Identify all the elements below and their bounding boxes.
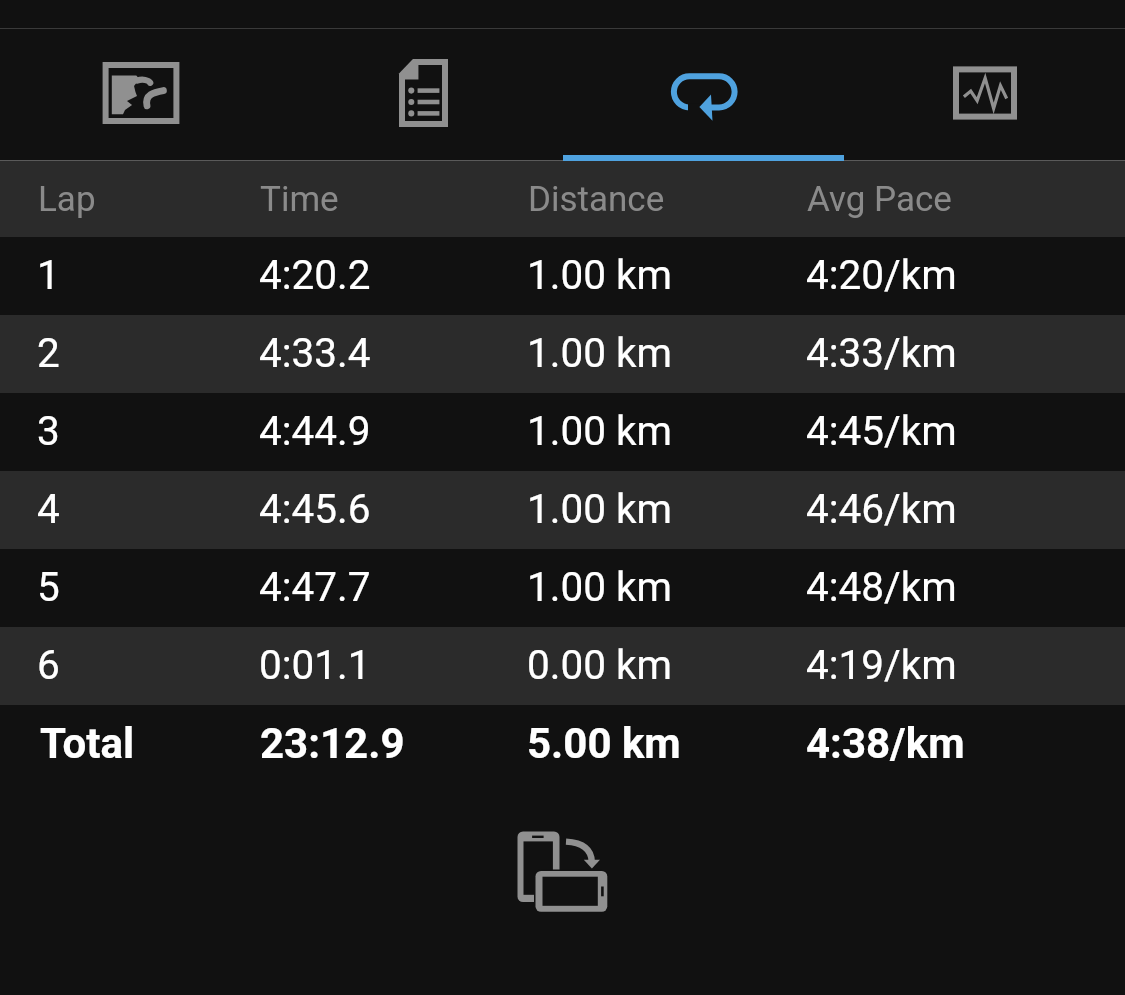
button[interactable]: Total — [0, 705, 1125, 783]
button[interactable]: 2 — [0, 315, 1125, 393]
button[interactable]: 6 — [0, 627, 1125, 705]
staticText: 4 — [37, 485, 60, 532]
staticText: 4:48/km — [806, 563, 957, 610]
staticText: 1.00 km — [527, 407, 673, 454]
staticText: Total — [40, 719, 134, 768]
staticText: 4:19/km — [806, 641, 957, 688]
staticText: 4:46/km — [806, 485, 957, 532]
staticText: 0:01.1 — [259, 641, 371, 688]
staticText: 3 — [37, 407, 60, 454]
staticText: 4:45/km — [806, 407, 957, 454]
staticText: 4:38/km — [806, 719, 965, 768]
button[interactable]: Graphs — [844, 29, 1125, 161]
staticText: 0.00 km — [527, 641, 673, 688]
staticText: 6 — [37, 641, 60, 688]
staticText: 1.00 km — [527, 485, 673, 532]
button[interactable]: 5 — [0, 549, 1125, 627]
staticText: 1 — [37, 251, 60, 298]
staticText: 1.00 km — [527, 329, 673, 376]
button[interactable]: 4 — [0, 471, 1125, 549]
button[interactable]: Rotate screen — [501, 810, 625, 934]
staticText: 4:33.4 — [259, 329, 371, 376]
staticText: 2 — [37, 329, 60, 376]
button[interactable]: 1 — [0, 237, 1125, 315]
staticText: Distance — [528, 179, 665, 220]
staticText: 4:47.7 — [259, 563, 371, 610]
button[interactable]: Map — [0, 29, 282, 161]
staticText: 1.00 km — [527, 563, 673, 610]
staticText: Time — [260, 179, 339, 220]
staticText: 1.00 km — [527, 251, 673, 298]
staticText: 5 — [37, 563, 60, 610]
staticText: Avg Pace — [807, 179, 952, 220]
staticText: Lap — [38, 179, 96, 220]
button[interactable]: Summary — [282, 29, 563, 161]
staticText: 4:45.6 — [259, 485, 371, 532]
staticText: 23:12.9 — [260, 719, 405, 768]
staticText: 5.00 km — [527, 719, 681, 768]
staticText: 4:20.2 — [259, 251, 371, 298]
button[interactable]: Laps — [563, 29, 844, 161]
button[interactable]: 3 — [0, 393, 1125, 471]
staticText: 4:33/km — [806, 329, 957, 376]
staticText: 4:20/km — [806, 251, 957, 298]
staticText: 4:44.9 — [259, 407, 371, 454]
